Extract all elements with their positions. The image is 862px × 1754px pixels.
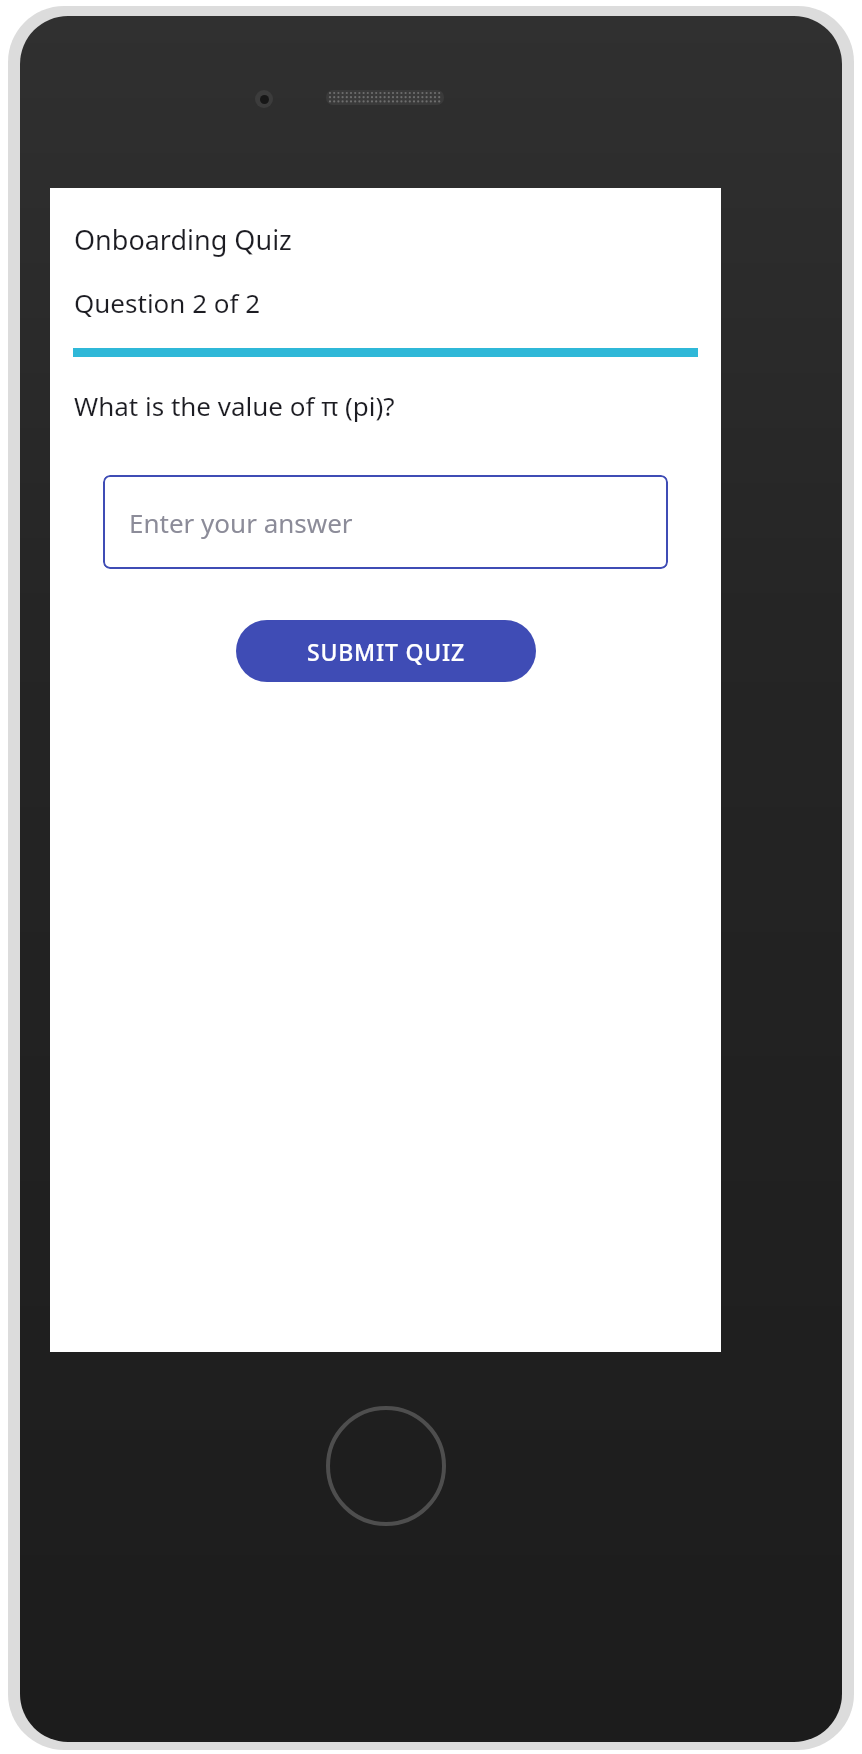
staticText: Enter your answer [129, 505, 353, 540]
staticText: What is the value of π (pi)? [74, 388, 395, 423]
staticText: SUBMIT QUIZ [307, 636, 465, 667]
button[interactable]: Home [325, 1405, 447, 1527]
staticText: Onboarding Quiz [74, 221, 292, 258]
button[interactable]: Enter your answer [103, 475, 668, 569]
button[interactable]: SUBMIT QUIZ [236, 620, 536, 682]
staticText: Question 2 of 2 [74, 285, 261, 320]
